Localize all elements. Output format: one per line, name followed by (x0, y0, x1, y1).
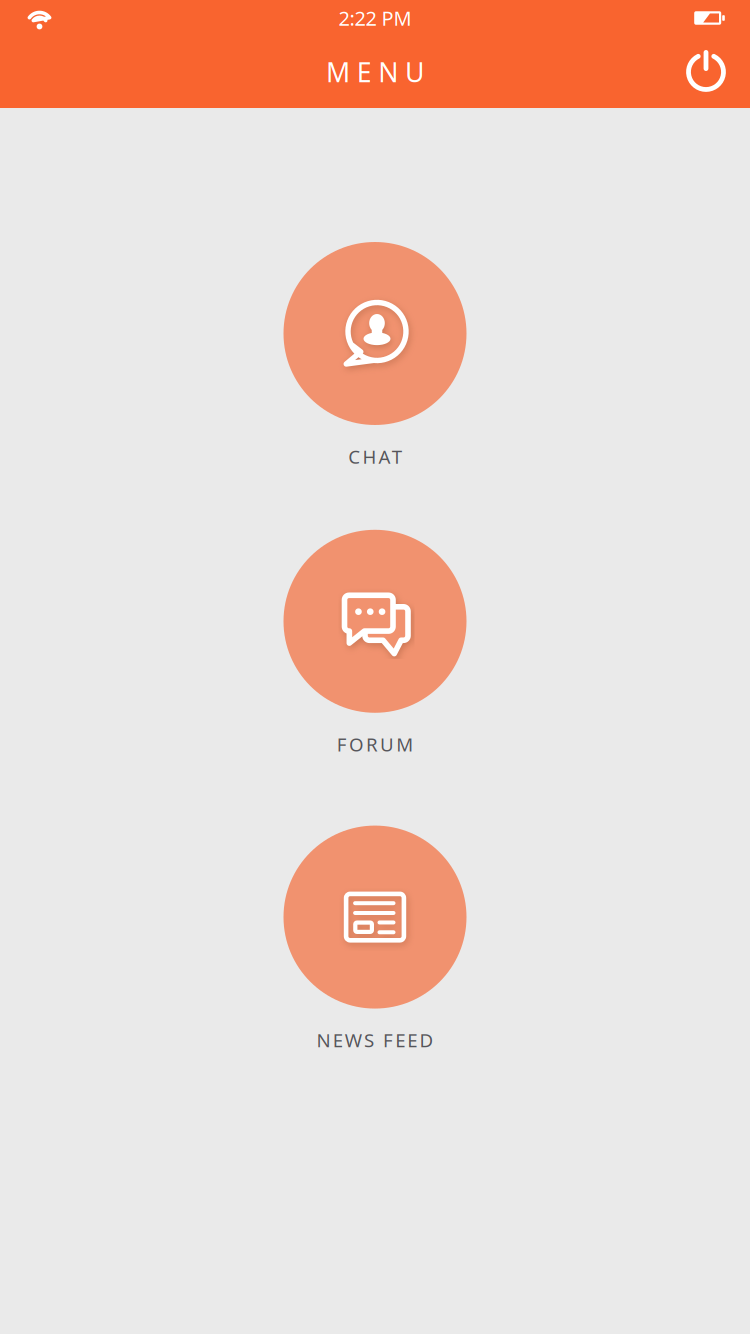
staticText: MENU (315, 54, 434, 90)
staticText: NEWS FEED (311, 1028, 438, 1052)
staticText: CHAT (343, 444, 407, 469)
button[interactable]: Power (680, 46, 732, 98)
button[interactable]: FORUM (205, 530, 545, 757)
button[interactable]: CHAT (205, 242, 545, 469)
button[interactable]: NEWS FEED (205, 826, 545, 1052)
staticText: FORUM (332, 732, 418, 757)
staticText: 2:22 PM (338, 5, 411, 31)
